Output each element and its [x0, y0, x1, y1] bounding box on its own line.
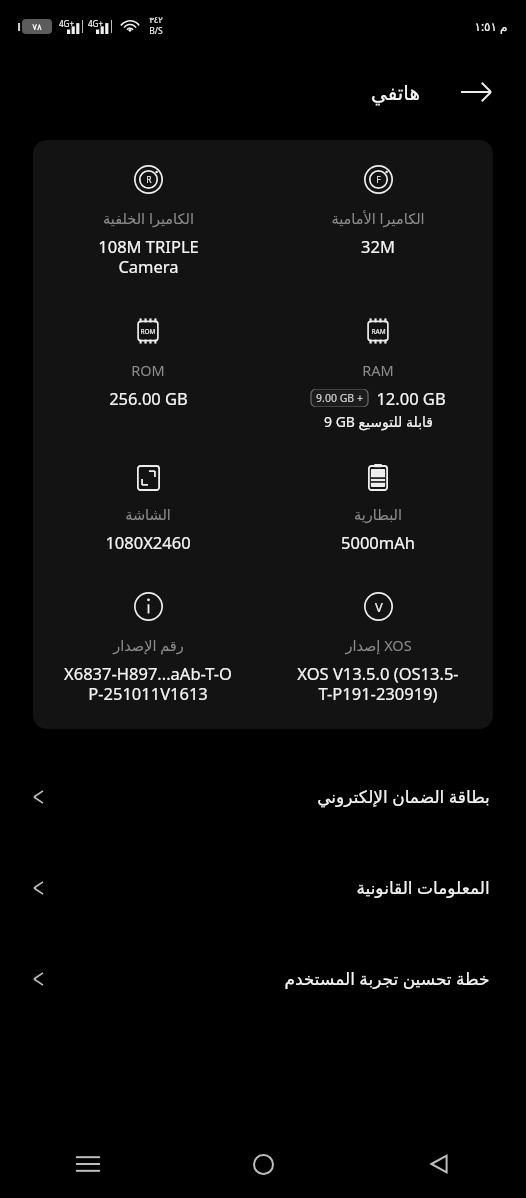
- button[interactable]: خطة تحسين تجربة المستخدم: [0, 933, 526, 1024]
- staticText: 32M: [361, 235, 395, 257]
- staticText: م ١:٥١: [474, 18, 508, 34]
- button[interactable]: المعلومات القانونية: [0, 842, 526, 933]
- staticText: بطاقة الضمان الإلكتروني: [317, 785, 490, 808]
- button[interactable]: الشاشة: [33, 463, 263, 553]
- button[interactable]: R: [33, 164, 263, 278]
- staticText: V: [375, 598, 383, 616]
- staticText: RAM: [371, 327, 386, 336]
- staticText: الكاميرا الخلفية: [103, 208, 194, 228]
- staticText: 1080X2460: [105, 531, 191, 553]
- staticText: إصدار XOS: [345, 635, 412, 655]
- staticText: الشاشة: [125, 507, 171, 524]
- staticText: خطة تحسين تجربة المستخدم: [284, 967, 490, 990]
- button[interactable]: بطاقة الضمان الإلكتروني: [0, 751, 526, 842]
- staticText: ROM: [131, 360, 165, 380]
- button[interactable]: البطارية: [263, 463, 493, 553]
- staticText: ٧٨: [32, 22, 42, 32]
- button[interactable]: الصفحة الرئيسية: [176, 1130, 351, 1198]
- staticText: 9.00 GB +: [316, 391, 363, 405]
- staticText: ROM: [140, 327, 156, 336]
- button[interactable]: F: [263, 164, 493, 257]
- button[interactable]: رجوع: [351, 1130, 526, 1198]
- staticText: B/S: [149, 25, 163, 37]
- staticText: 5000mAh: [341, 531, 415, 553]
- staticText: R: [146, 174, 152, 186]
- staticText: ‏9 GB قابلة للتوسيع: [324, 412, 433, 431]
- staticText: هاتفي: [371, 81, 420, 104]
- button[interactable]: التطبيقات الحديثة: [0, 1130, 176, 1198]
- button[interactable]: رجوع: [454, 70, 498, 114]
- staticText: 256.00 GB: [109, 387, 188, 409]
- staticText: F: [376, 174, 381, 186]
- button[interactable]: رقم الإصدار: [33, 591, 263, 705]
- button[interactable]: ROM: [33, 316, 263, 409]
- staticText: البطارية: [354, 507, 402, 524]
- staticText: RAM: [362, 360, 394, 380]
- staticText: X6837-H897...aAb-T-O P-251011V1613: [64, 662, 232, 705]
- staticText: XOS V13.5.0 (OS13.5- T-P191-230919): [297, 662, 459, 705]
- staticText: المعلومات القانونية: [356, 876, 490, 899]
- button[interactable]: V: [263, 591, 493, 705]
- staticText: الكاميرا الأمامية: [331, 208, 425, 228]
- staticText: 4G+: [88, 18, 103, 29]
- staticText: رقم الإصدار: [113, 635, 184, 655]
- staticText: 108M TRIPLE Camera: [98, 235, 199, 278]
- staticText: ٣٤٢: [149, 15, 163, 25]
- staticText: 12.00 GB: [376, 387, 446, 409]
- button[interactable]: RAM: [263, 316, 493, 431]
- staticText: 4G+: [59, 18, 74, 29]
